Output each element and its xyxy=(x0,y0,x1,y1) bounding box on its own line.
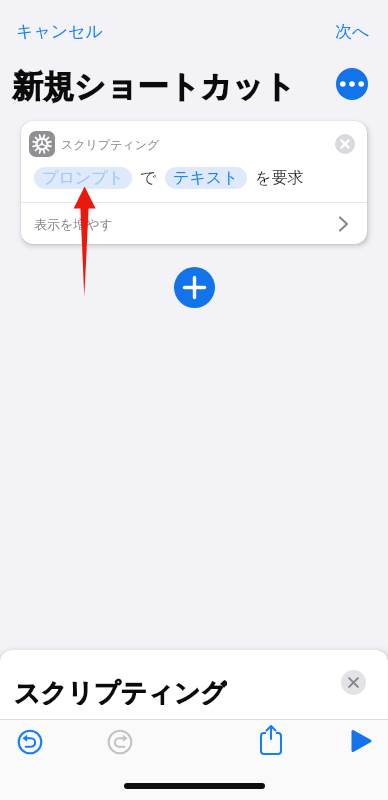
staticText: を要求 xyxy=(255,168,304,188)
button[interactable]: 次へ xyxy=(329,16,376,46)
button[interactable] xyxy=(255,725,287,757)
button[interactable]: 表示を増やす xyxy=(21,203,367,244)
button[interactable]: キャンセル xyxy=(10,16,109,46)
staticText: プロンプト xyxy=(42,168,124,188)
staticText: スクリプティング xyxy=(14,677,227,705)
staticText: で xyxy=(140,168,157,188)
button[interactable] xyxy=(174,267,215,308)
button[interactable] xyxy=(345,725,377,757)
staticText: 新規ショートカット xyxy=(12,67,296,106)
button[interactable] xyxy=(14,726,46,758)
staticText: 表示を増やす xyxy=(34,216,113,232)
staticText: スクリプティング xyxy=(61,137,160,152)
button[interactable]: プロンプト xyxy=(34,167,132,189)
button[interactable] xyxy=(341,670,366,695)
staticText: 次へ xyxy=(335,21,370,42)
button[interactable] xyxy=(104,726,136,758)
staticText: キャンセル xyxy=(16,21,103,42)
staticText: テキスト xyxy=(173,168,239,188)
button[interactable]: スクリプティング xyxy=(29,131,160,157)
button[interactable]: テキスト xyxy=(165,167,247,189)
button[interactable] xyxy=(335,134,355,154)
button[interactable] xyxy=(336,68,368,100)
